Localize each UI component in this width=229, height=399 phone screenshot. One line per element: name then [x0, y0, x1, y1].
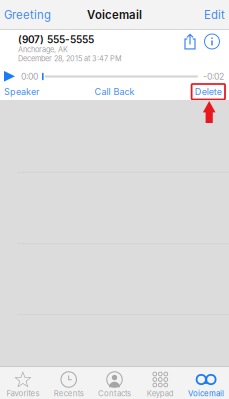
button[interactable]: Contacts	[92, 367, 137, 399]
button[interactable]: Greeting	[1, 1, 54, 29]
staticText: Recents	[54, 389, 84, 398]
button[interactable]: Recents	[46, 367, 92, 399]
staticText: -0:02	[203, 71, 224, 82]
button[interactable]: Play	[4, 71, 15, 82]
button[interactable]: Favorites	[0, 367, 46, 399]
staticText: Edit	[204, 8, 225, 22]
button[interactable]: Voicemail	[183, 367, 229, 399]
staticText: Favorites	[6, 389, 39, 398]
staticText: Delete	[195, 86, 222, 97]
staticText: 0:00	[21, 71, 38, 82]
button[interactable]: More Info	[204, 33, 220, 50]
button[interactable]: Edit	[201, 1, 228, 29]
button[interactable]: Keypad	[137, 367, 183, 399]
staticText: Anchorage, AK	[18, 45, 68, 54]
staticText: Speaker	[4, 86, 39, 97]
staticText: Call Back	[94, 86, 134, 97]
staticText: December 28, 2015 at 3:47 PM	[18, 54, 122, 63]
button[interactable]: Share	[184, 33, 196, 49]
button[interactable]: Speaker	[4, 84, 78, 99]
button[interactable]: Call Back	[78, 84, 151, 99]
staticText: Contacts	[98, 389, 131, 398]
staticText: Keypad	[147, 389, 174, 398]
staticText: Greeting	[4, 8, 51, 22]
button[interactable]: Delete	[151, 84, 225, 99]
staticText: (907) 555-5555	[18, 33, 94, 46]
staticText: Voicemail	[188, 389, 224, 398]
staticText: Voicemail	[87, 8, 142, 22]
